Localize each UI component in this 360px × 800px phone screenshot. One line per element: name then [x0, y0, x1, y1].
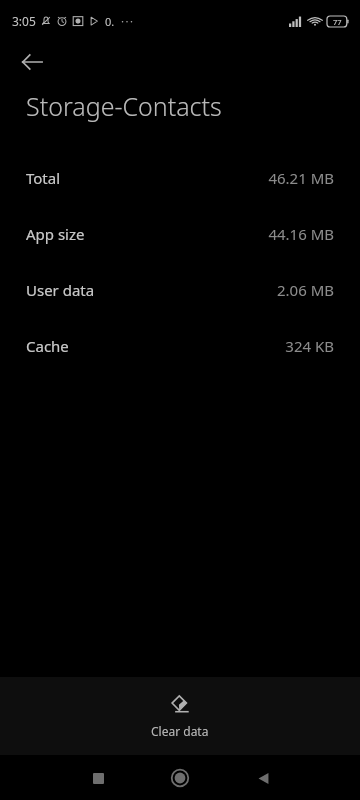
staticText: Cache [26, 336, 69, 356]
staticText: App size [26, 224, 85, 244]
staticText: 2.06 MB [276, 280, 334, 300]
button[interactable]: Cache [0, 318, 360, 374]
button[interactable]: Back [245, 760, 281, 796]
staticText: Clear data [151, 723, 209, 739]
button[interactable]: Total [0, 150, 360, 206]
staticText: Total [26, 168, 61, 188]
button[interactable]: Back [14, 44, 50, 80]
staticText: 46.21 MB [268, 168, 334, 188]
staticText: 3:05 [12, 13, 36, 29]
button[interactable]: Recent apps [80, 760, 116, 796]
staticText: Storage-Contacts [26, 89, 222, 123]
button[interactable]: Home [162, 760, 198, 796]
button[interactable]: Clear data [0, 677, 360, 755]
button[interactable]: User data [0, 262, 360, 318]
button[interactable]: App size [0, 206, 360, 262]
staticText: 0. [105, 14, 115, 29]
staticText: 324 KB [285, 336, 334, 356]
staticText: User data [26, 280, 95, 300]
staticText: 77 [333, 17, 342, 27]
staticText: 44.16 MB [268, 224, 334, 244]
